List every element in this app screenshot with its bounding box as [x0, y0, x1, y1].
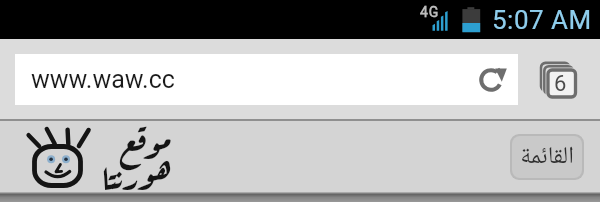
button[interactable]: Tabs, 6 open	[521, 50, 593, 108]
button[interactable]: www.waw.cc	[15, 54, 518, 105]
staticText: موقع	[120, 119, 172, 167]
staticText: القائمة	[520, 140, 574, 173]
staticText: 5:07 AM	[492, 5, 592, 35]
staticText: www.waw.cc	[31, 65, 175, 94]
button[interactable]: القائمة	[512, 136, 582, 178]
staticText: هورنتا	[102, 150, 172, 198]
staticText: 6	[554, 71, 567, 97]
button[interactable]: Refresh	[464, 54, 518, 105]
staticText: 4G	[420, 4, 440, 20]
